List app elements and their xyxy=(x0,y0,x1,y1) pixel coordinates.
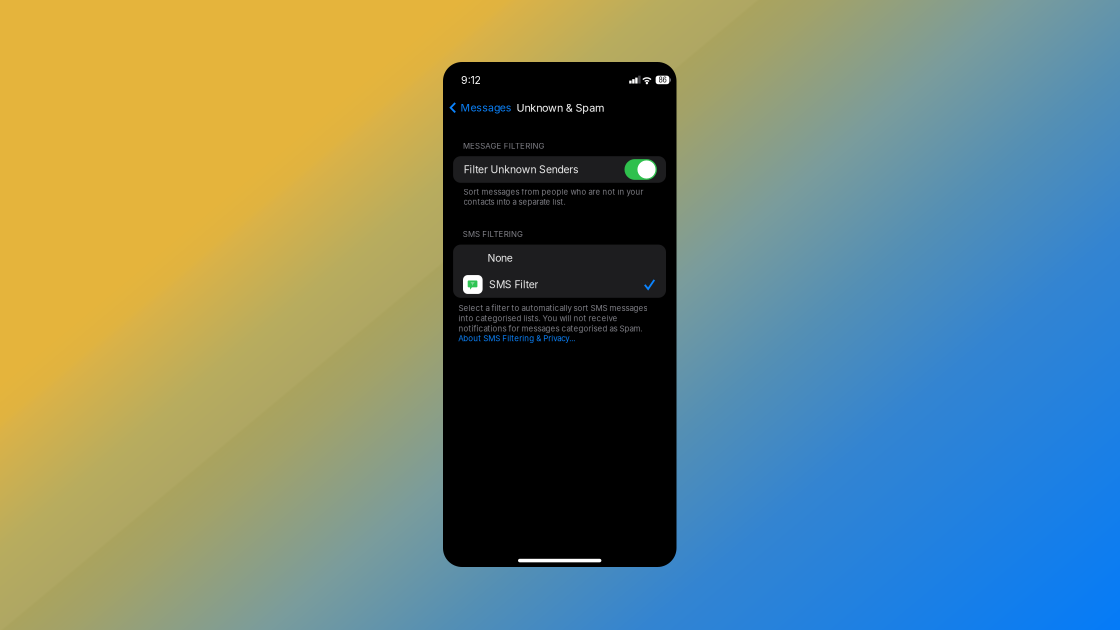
staticText: Unknown & Spam xyxy=(517,101,604,114)
staticText: Select a filter to automatically sort SM… xyxy=(458,303,647,333)
button[interactable]: SMS Filter xyxy=(453,271,666,298)
staticText: SMS FILTERING xyxy=(463,229,523,239)
staticText: Messages xyxy=(460,101,512,114)
staticText: About SMS Filtering & Privacy... xyxy=(458,334,575,343)
staticText: SMS Filter xyxy=(489,278,538,291)
button[interactable]: Messages xyxy=(450,101,512,114)
button[interactable]: None xyxy=(453,245,666,271)
staticText: None xyxy=(487,252,513,264)
button[interactable]: About SMS Filtering & Privacy... xyxy=(458,334,575,343)
staticText: MESSAGE FILTERING xyxy=(463,141,544,151)
staticText: Filter Unknown Senders xyxy=(464,163,578,176)
button[interactable]: Filter Unknown Senders xyxy=(453,156,666,183)
staticText: 86 xyxy=(658,76,666,84)
staticText: 9:12 xyxy=(461,74,480,87)
staticText: Sort messages from people who are not in… xyxy=(463,187,643,206)
